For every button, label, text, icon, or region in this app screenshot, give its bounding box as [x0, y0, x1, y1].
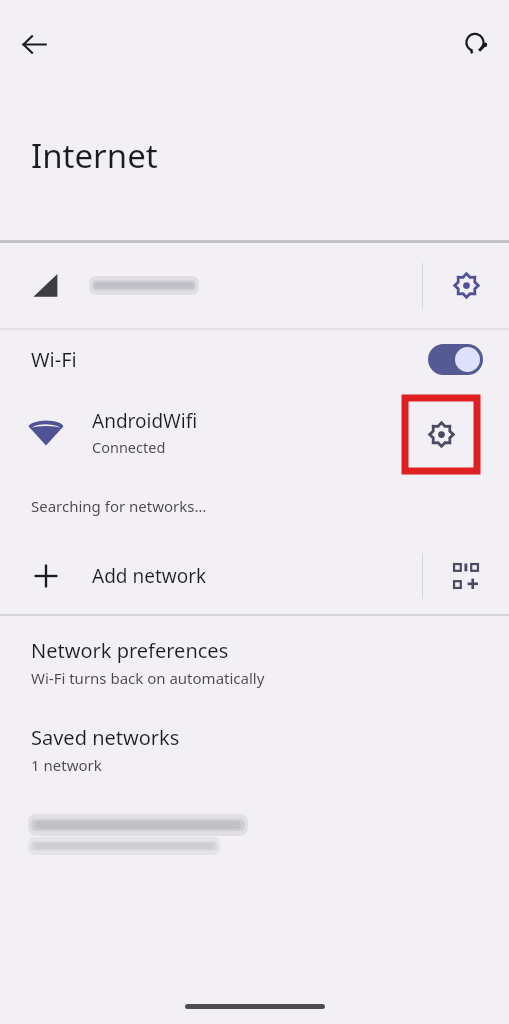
button[interactable] — [0, 789, 509, 852]
staticText: Wi-Fi turns back on automatically — [31, 668, 265, 688]
button[interactable]: Scan QR code — [423, 538, 509, 614]
staticText: 1 network — [31, 755, 102, 775]
staticText: Network preferences — [31, 637, 229, 664]
button[interactable]: Saved networks — [0, 702, 509, 789]
staticText: Searching for networks… — [31, 496, 207, 516]
staticText: Connected — [92, 437, 166, 457]
staticText: Wi-Fi — [31, 346, 77, 373]
button[interactable]: AndroidWifi — [0, 388, 509, 476]
button[interactable]: Wi-Fi — [0, 330, 509, 388]
staticText: Saved networks — [31, 724, 180, 751]
button[interactable]: Mobile network settings — [423, 243, 509, 328]
button[interactable]: Back — [10, 20, 58, 68]
button[interactable]: Network preferences — [0, 616, 509, 702]
staticText: AndroidWifi — [92, 408, 198, 434]
button[interactable]: Network details — [405, 398, 477, 471]
staticText: Add network — [92, 563, 207, 589]
staticText: Internet — [31, 133, 158, 178]
button[interactable]: Reset network settings — [453, 20, 501, 68]
button[interactable]: Wi-Fi on — [428, 344, 483, 375]
button[interactable]: Add network — [0, 538, 509, 614]
button[interactable]: Mobile network settings — [0, 243, 509, 328]
